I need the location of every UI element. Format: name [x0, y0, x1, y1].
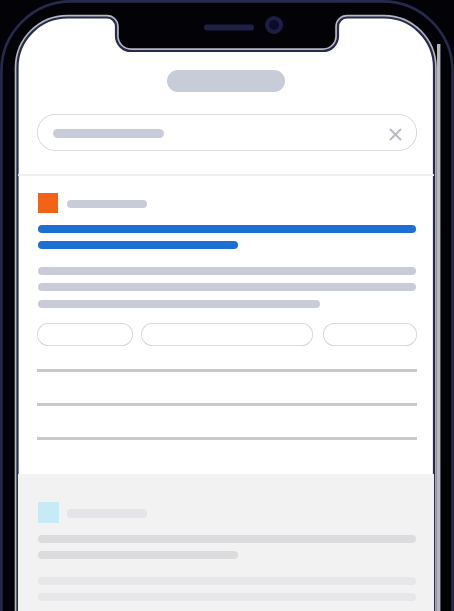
button[interactable] — [141, 323, 313, 346]
button[interactable] — [38, 241, 238, 249]
button[interactable] — [37, 323, 133, 346]
button[interactable]: Clear search — [389, 128, 402, 141]
button[interactable] — [323, 323, 417, 346]
button[interactable] — [167, 70, 285, 92]
button[interactable]: Clear search — [37, 114, 417, 151]
button[interactable] — [38, 225, 416, 233]
